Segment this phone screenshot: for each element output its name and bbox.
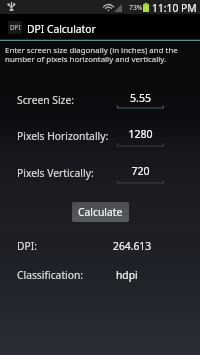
staticText: DPI: (17, 239, 37, 253)
staticText: Enter screen size diagonally (in inches)… (5, 45, 178, 65)
staticText: 720 (117, 164, 164, 178)
other: Wi-Fi (104, 4, 113, 11)
staticText: DPI (10, 23, 21, 32)
other: USB connected (8, 2, 15, 11)
staticText: Screen Size: (17, 93, 75, 107)
button[interactable]: Calculate (72, 202, 129, 222)
staticText: 73% (129, 3, 143, 12)
button[interactable]: 720 (117, 160, 164, 178)
staticText: 5.55 (117, 91, 164, 105)
staticText: Pixels Horizontally: (17, 129, 109, 143)
staticText: 264.613 (113, 239, 152, 253)
staticText: Pixels Vertically: (17, 166, 94, 180)
staticText: DPI Calculator (27, 22, 96, 36)
staticText: hdpi (116, 268, 138, 282)
button[interactable]: App icon (8, 21, 22, 34)
other: Mobile signal (114, 4, 122, 12)
staticText: 1280 (117, 127, 164, 141)
other: Battery 73 percent (143, 3, 149, 12)
staticText: 11:10 PM (152, 1, 197, 15)
button[interactable]: 5.55 (117, 87, 164, 105)
staticText: Classification: (17, 268, 84, 282)
staticText: Calculate (78, 205, 123, 219)
button[interactable]: 1280 (117, 123, 164, 141)
